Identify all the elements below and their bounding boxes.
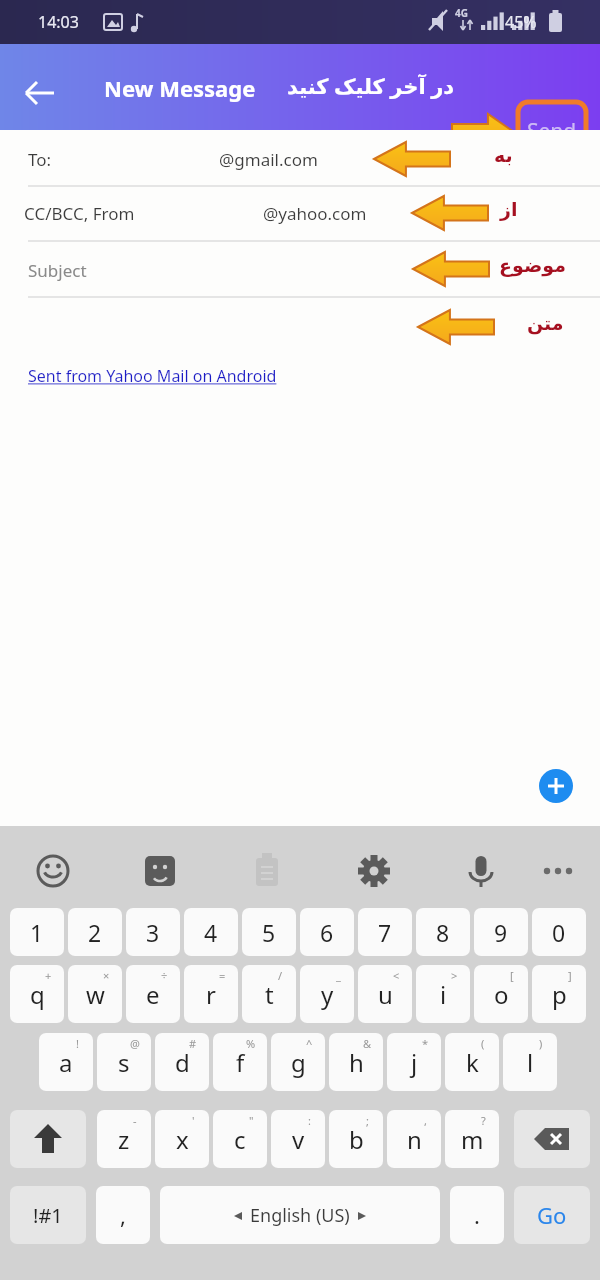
staticText: ) [539, 1036, 543, 1051]
button[interactable]: . [450, 1186, 504, 1244]
staticText: @yahoo.com [263, 202, 367, 225]
staticText: i [440, 978, 447, 1011]
button[interactable]: u [358, 965, 412, 1023]
staticText: g [291, 1046, 306, 1079]
button[interactable]: !#1 [10, 1186, 86, 1244]
button[interactable]: v [271, 1110, 325, 1168]
button[interactable]: s [97, 1033, 151, 1091]
staticText: k [466, 1046, 479, 1079]
staticText: × [103, 968, 110, 983]
button[interactable]: q [10, 965, 64, 1023]
button[interactable]: Go [514, 1186, 590, 1244]
button[interactable]: n [387, 1110, 441, 1168]
button[interactable]: o [474, 965, 528, 1023]
staticText: به [494, 144, 564, 166]
button[interactable]: x [155, 1110, 209, 1168]
staticText: CC/BCC, From [24, 202, 135, 225]
staticText: New Message [104, 73, 256, 103]
button[interactable]: h [329, 1033, 383, 1091]
staticText: r [206, 978, 216, 1011]
button[interactable]: 8 [416, 908, 470, 956]
staticText: f [236, 1046, 245, 1079]
button[interactable]: b [329, 1110, 383, 1168]
staticText: = [219, 968, 226, 983]
staticText: h [349, 1046, 364, 1079]
staticText: !#1 [33, 1202, 63, 1229]
button[interactable]: 7 [358, 908, 412, 956]
staticText: e [146, 978, 160, 1011]
button[interactable]: i [416, 965, 470, 1023]
staticText: 1 [30, 917, 44, 948]
staticText: v [292, 1123, 305, 1156]
button[interactable]: 2 [68, 908, 122, 956]
button[interactable]: e [126, 965, 180, 1023]
button[interactable]: l [503, 1033, 557, 1091]
staticText: m [461, 1123, 484, 1156]
button[interactable]: 1 [10, 908, 64, 956]
button[interactable]: k [445, 1033, 499, 1091]
staticText: 7 [378, 917, 392, 948]
button[interactable]: 4 [184, 908, 238, 956]
staticText: متن [527, 312, 597, 334]
staticText: . [474, 1200, 480, 1230]
button[interactable]: t [242, 965, 296, 1023]
staticText: " [249, 1113, 254, 1128]
staticText: j [411, 1046, 418, 1079]
staticText: d [175, 1046, 190, 1079]
staticText: , [424, 1113, 427, 1128]
staticText: z [118, 1123, 130, 1156]
button[interactable]: w [68, 965, 122, 1023]
button[interactable]: m [445, 1110, 499, 1168]
staticText: 45% [505, 11, 537, 33]
button[interactable]: Sent from Yahoo Mail on Android [28, 365, 277, 387]
staticText: - [133, 1113, 137, 1128]
staticText: x [176, 1123, 189, 1156]
button[interactable]: Key [10, 1110, 86, 1168]
staticText: از [500, 198, 570, 220]
staticText: @ [130, 1036, 140, 1051]
button[interactable]: 9 [474, 908, 528, 956]
staticText: English (US) [250, 1203, 350, 1228]
staticText: 6 [320, 917, 334, 948]
button[interactable]: Send [516, 100, 588, 162]
button[interactable]: d [155, 1033, 209, 1091]
staticText: Send [527, 117, 577, 146]
staticText: 14:03 [38, 11, 79, 33]
staticText: < [393, 968, 400, 983]
staticText: Subject [28, 259, 87, 282]
staticText: l [527, 1046, 534, 1079]
button[interactable]: Add attachment [539, 769, 573, 803]
button[interactable]: Back [18, 69, 66, 117]
staticText: [ [510, 968, 514, 983]
staticText: o [494, 978, 509, 1011]
button[interactable]: 5 [242, 908, 296, 956]
staticText: 4 [204, 917, 218, 948]
button[interactable]: 3 [126, 908, 180, 956]
staticText: 5 [262, 917, 276, 948]
button[interactable]: , [96, 1186, 150, 1244]
staticText: 2 [88, 917, 102, 948]
button[interactable]: f [213, 1033, 267, 1091]
staticText: ; [366, 1113, 369, 1128]
button[interactable]: r [184, 965, 238, 1023]
staticText: n [407, 1123, 422, 1156]
button[interactable]: p [532, 965, 586, 1023]
button[interactable]: j [387, 1033, 441, 1091]
staticText: ' [192, 1113, 195, 1128]
staticText: 3 [146, 917, 160, 948]
button[interactable]: c [213, 1110, 267, 1168]
staticText: , [120, 1200, 126, 1230]
button[interactable]: z [97, 1110, 151, 1168]
button[interactable]: g [271, 1033, 325, 1091]
button[interactable]: English (US) [160, 1186, 440, 1244]
staticText: ^ [306, 1036, 313, 1051]
button[interactable]: y [300, 965, 354, 1023]
staticText: Go [537, 1200, 567, 1230]
staticText: % [246, 1036, 256, 1051]
staticText: To: [28, 148, 52, 171]
button[interactable]: Key [514, 1110, 590, 1168]
staticText: : [308, 1113, 311, 1128]
button[interactable]: 0 [532, 908, 586, 956]
button[interactable]: 6 [300, 908, 354, 956]
button[interactable]: a [39, 1033, 93, 1091]
